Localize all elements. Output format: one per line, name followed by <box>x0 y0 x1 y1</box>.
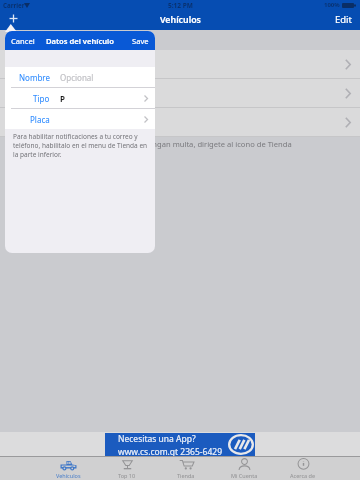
staticText: Mi Cuenta <box>231 472 258 479</box>
staticText: P <box>60 93 65 104</box>
button[interactable]: Tipo <box>5 88 155 108</box>
staticText: 100% <box>324 1 340 9</box>
staticText: Necesitas una App? <box>118 433 196 445</box>
staticText: Vehículos <box>160 14 201 26</box>
staticText: Carrier <box>3 1 25 9</box>
staticText: Tienda <box>177 472 195 479</box>
staticText: Si queres que te avisemos cuando te pong… <box>11 139 292 149</box>
button[interactable]: Mi Cuenta <box>224 456 264 480</box>
staticText: www.cs.com.gt 2365-6429 <box>118 446 222 456</box>
button[interactable]: Edit <box>335 13 360 30</box>
button[interactable]: Cancel <box>5 36 35 46</box>
button[interactable]: Tienda <box>166 456 206 480</box>
button[interactable]: Placa <box>5 109 155 129</box>
button[interactable]: Top 10 <box>107 456 147 480</box>
button[interactable]: Necesitas una App? <box>105 433 255 456</box>
button[interactable]: Vehículos <box>48 456 88 480</box>
button[interactable] <box>0 79 360 108</box>
button[interactable]: Save <box>132 36 155 46</box>
staticText: Acerca de <box>290 472 316 479</box>
button[interactable]: Add vehicle <box>3 8 24 29</box>
button[interactable] <box>0 108 360 137</box>
staticText: Nombre <box>19 72 50 83</box>
staticText: Top 10 <box>118 472 136 479</box>
button[interactable]: Acerca de <box>283 456 323 480</box>
staticText: Placa <box>30 114 50 125</box>
staticText: Vehículos <box>56 472 81 479</box>
staticText: Datos del vehículo <box>46 36 114 46</box>
staticText: Opcional <box>60 72 94 83</box>
staticText: 5:12 PM <box>168 1 193 10</box>
staticText: Para habilitar notificaciones a tu corre… <box>13 132 154 159</box>
staticText: Tipo <box>33 93 50 104</box>
button[interactable] <box>0 50 360 79</box>
button[interactable]: Nombre <box>5 67 155 87</box>
